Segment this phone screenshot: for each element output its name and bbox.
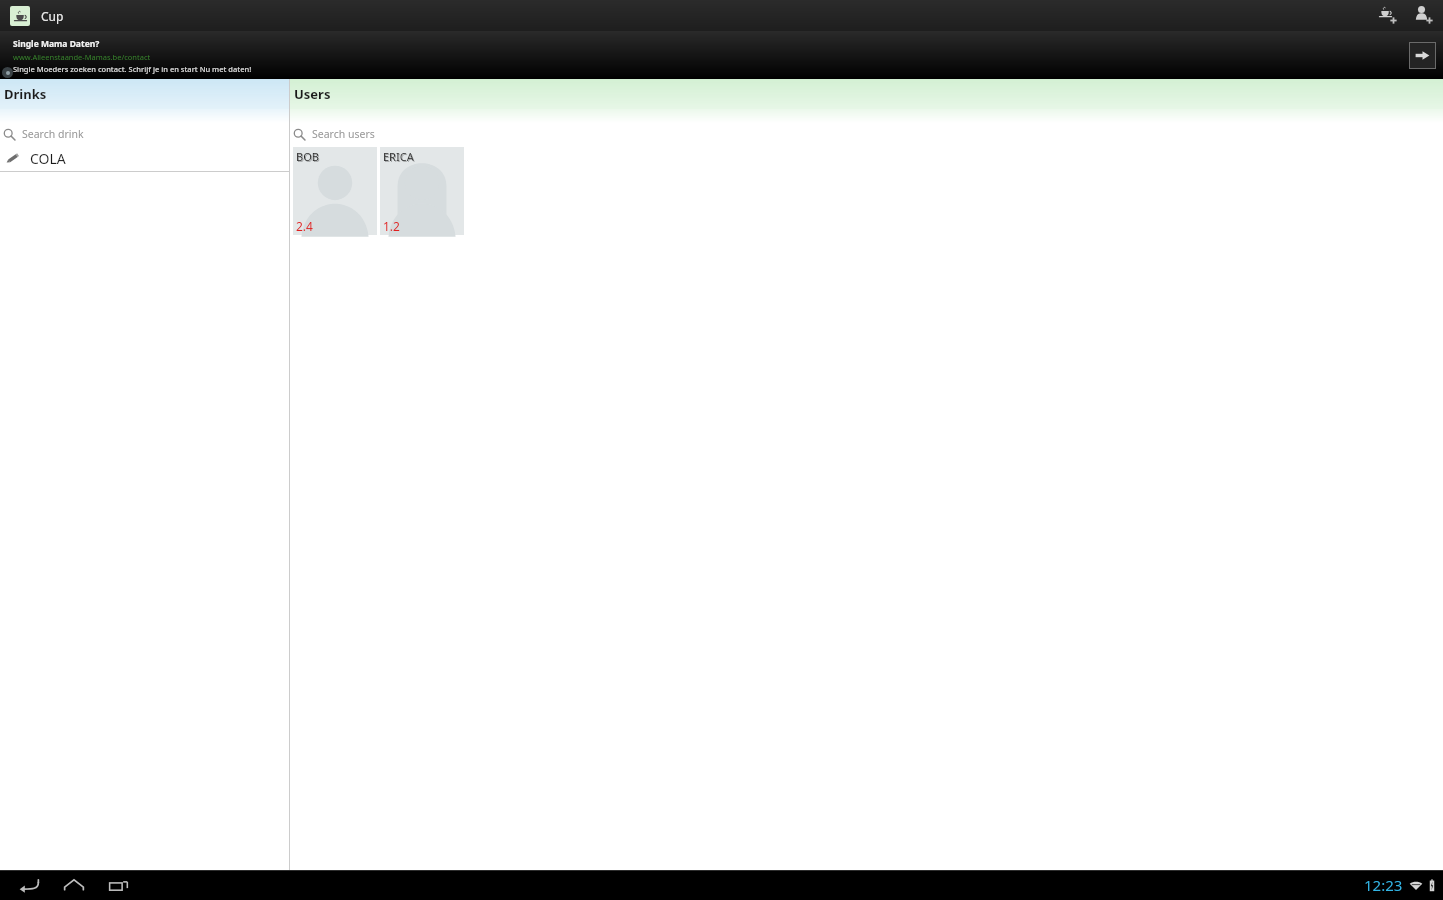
button[interactable]: ERICA (380, 147, 464, 235)
button[interactable]: Ad information (2, 67, 13, 78)
staticText: BOB (296, 149, 319, 164)
button[interactable]: Back (6, 870, 51, 900)
button[interactable]: Add user (1405, 0, 1443, 31)
staticText: Single Moeders zoeken contact. Schrijf j… (13, 64, 252, 74)
button[interactable]: Search users (290, 123, 1443, 145)
staticText: 2.4 (296, 218, 313, 234)
staticText: BOB (297, 150, 320, 165)
button[interactable]: Recent apps (96, 870, 141, 900)
button[interactable]: Search drink (0, 123, 289, 145)
button[interactable]: Open ad (1410, 43, 1435, 68)
button[interactable] (10, 6, 30, 26)
staticText: 12:23 (1364, 875, 1403, 895)
button[interactable]: Single Mama Daten? (0, 31, 1443, 79)
staticText: Cup (41, 8, 64, 24)
staticText: ERICA (383, 149, 414, 164)
staticText: www.Alleenstaande-Mamas.be/contact (13, 52, 151, 62)
staticText: ERICA (384, 150, 415, 165)
button[interactable]: BOB (293, 147, 377, 235)
button[interactable]: Home (51, 870, 96, 900)
staticText: 1.2 (383, 218, 400, 234)
staticText: Drinks (4, 85, 47, 103)
staticText: COLA (30, 149, 66, 168)
staticText: Search drink (22, 127, 84, 141)
staticText: Search users (312, 127, 375, 141)
staticText: Users (294, 85, 331, 103)
staticText: Single Mama Daten? (13, 38, 100, 50)
button[interactable]: Add drink (1371, 0, 1405, 31)
button[interactable]: COLA (0, 145, 289, 172)
